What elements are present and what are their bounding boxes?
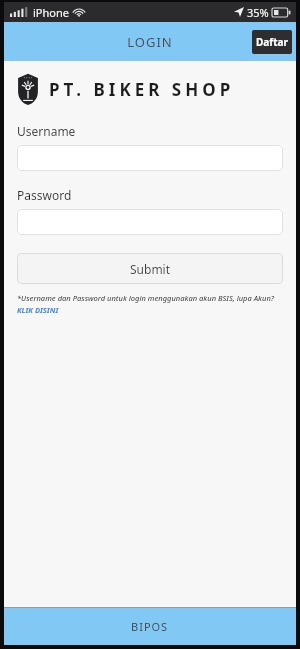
staticText: PT. BIKER SHOP — [49, 78, 235, 101]
button[interactable]: Daftar — [252, 30, 292, 54]
staticText: LOGIN — [4, 33, 296, 51]
staticText: 35% — [247, 5, 269, 20]
staticText: iPhone — [33, 5, 69, 20]
staticText: Password — [17, 187, 72, 203]
staticText: BIPOS — [131, 619, 169, 634]
button[interactable] — [17, 145, 283, 171]
staticText: *Username dan Password untuk login mengg… — [17, 293, 283, 316]
staticText: Daftar — [256, 35, 288, 49]
button[interactable]: Submit — [17, 253, 283, 284]
button[interactable]: BIPOS — [4, 608, 296, 645]
staticText: Username — [17, 123, 76, 139]
button[interactable] — [17, 209, 283, 235]
button[interactable]: *Username dan Password untuk login mengg… — [17, 293, 283, 316]
staticText: Submit — [130, 261, 171, 277]
